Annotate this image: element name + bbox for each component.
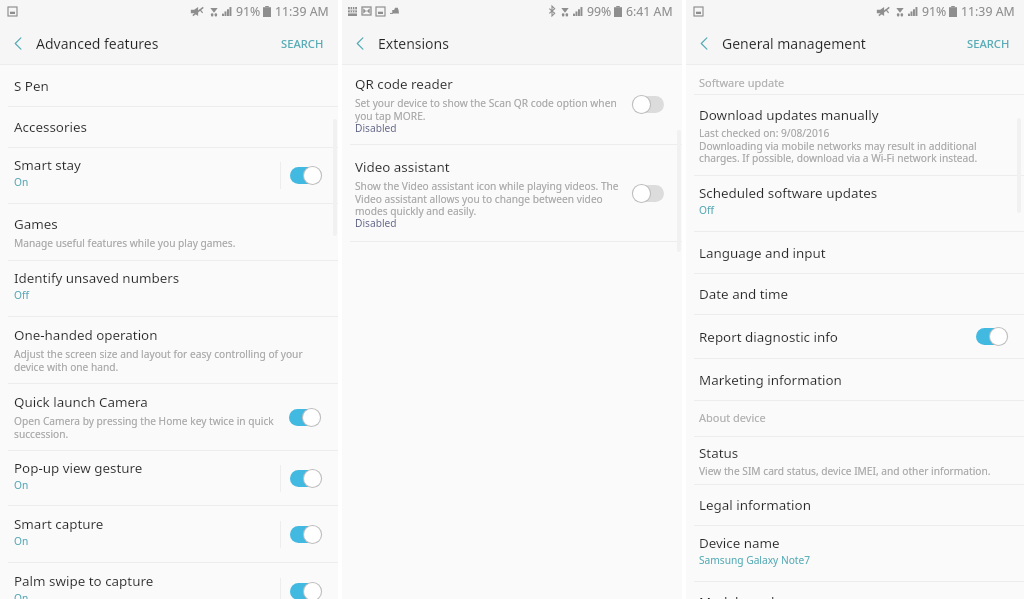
- staticText: Scheduled software updates: [699, 184, 878, 202]
- staticText: One-handed operation: [14, 326, 158, 344]
- staticText: Last checked on: 9/08/2016 Downloading v…: [699, 126, 978, 165]
- button[interactable]: One-handed operation: [0, 317, 338, 383]
- button[interactable]: Identify unsaved numbers: [0, 261, 338, 316]
- staticText: SEARCH: [967, 36, 1010, 51]
- staticText: 91%: [922, 3, 947, 20]
- staticText: On: [14, 591, 29, 599]
- button[interactable]: Smart capture switch: [290, 524, 321, 545]
- staticText: Show the Video assistant icon while play…: [355, 179, 619, 218]
- button[interactable]: Pop-up view gesture switch: [290, 468, 321, 489]
- button[interactable]: Language and input: [686, 232, 1024, 273]
- button[interactable]: Device name: [686, 526, 1024, 581]
- button[interactable]: Legal information: [686, 485, 1024, 525]
- button[interactable]: Navigate up: [348, 31, 372, 55]
- button[interactable]: Palm swipe to capture switch: [290, 581, 321, 599]
- staticText: Games: [14, 215, 58, 233]
- button[interactable]: Status: [686, 437, 1024, 484]
- button[interactable]: Quick launch Camera switch: [289, 407, 320, 428]
- staticText: Download updates manually: [699, 106, 879, 124]
- staticText: On: [14, 175, 29, 189]
- staticText: On: [14, 534, 29, 548]
- button[interactable]: Download updates manually: [686, 95, 1024, 175]
- staticText: Open Camera by pressing the Home key twi…: [14, 414, 274, 441]
- staticText: On: [14, 478, 29, 492]
- staticText: Extensions: [378, 34, 449, 53]
- button[interactable]: Navigate up: [692, 31, 716, 55]
- button[interactable]: S Pen: [0, 65, 338, 106]
- staticText: 6:41 AM: [626, 3, 673, 20]
- button[interactable]: Video assistant switch: [633, 183, 664, 204]
- button[interactable]: Palm swipe to capture: [0, 563, 338, 599]
- staticText: Set your device to show the Scan QR code…: [355, 96, 617, 123]
- staticText: About device: [699, 410, 766, 425]
- staticText: Smart capture: [14, 515, 104, 533]
- button[interactable]: Smart capture: [0, 506, 338, 562]
- staticText: 91%: [236, 3, 261, 20]
- staticText: Legal information: [699, 496, 811, 514]
- button[interactable]: Accessories: [0, 107, 338, 147]
- button[interactable]: Scheduled software updates: [686, 176, 1024, 231]
- button[interactable]: Pop-up view gesture: [0, 451, 338, 505]
- button[interactable]: Marketing information: [686, 359, 1024, 400]
- staticText: S Pen: [14, 77, 49, 95]
- button[interactable]: Date and time: [686, 274, 1024, 314]
- staticText: Palm swipe to capture: [14, 572, 154, 590]
- staticText: 11:39 AM: [275, 3, 329, 20]
- staticText: Off: [14, 288, 29, 302]
- staticText: Device name: [699, 534, 780, 552]
- button[interactable]: Report diagnostic info switch: [976, 326, 1007, 347]
- staticText: Accessories: [14, 118, 87, 136]
- staticText: Pop-up view gesture: [14, 459, 143, 477]
- staticText: Advanced features: [36, 34, 159, 53]
- staticText: Quick launch Camera: [14, 393, 148, 411]
- button[interactable]: QR code reader switch: [633, 94, 664, 115]
- button[interactable]: Report diagnostic info: [686, 315, 1024, 358]
- button[interactable]: Smart stay: [0, 148, 338, 203]
- staticText: Disabled: [355, 121, 397, 135]
- button[interactable]: QR code reader: [342, 65, 682, 144]
- staticText: 11:39 AM: [961, 3, 1015, 20]
- staticText: Status: [699, 444, 739, 462]
- button[interactable]: Model number: [686, 582, 1024, 599]
- staticText: Smart stay: [14, 156, 81, 174]
- staticText: SEARCH: [281, 36, 324, 51]
- button[interactable]: Smart stay switch: [290, 165, 321, 186]
- staticText: Language and input: [699, 244, 826, 262]
- staticText: Off: [699, 203, 714, 217]
- staticText: Adjust the screen size and layout for ea…: [14, 347, 303, 374]
- staticText: Manage useful features while you play ga…: [14, 236, 236, 250]
- button[interactable]: SEARCH: [964, 32, 1013, 55]
- staticText: Samsung Galaxy Note7: [699, 553, 811, 567]
- staticText: Software update: [699, 75, 785, 90]
- button[interactable]: Navigate up: [6, 31, 30, 55]
- staticText: View the SIM card status, device IMEI, a…: [699, 464, 991, 478]
- staticText: Report diagnostic info: [699, 328, 838, 346]
- staticText: 99%: [587, 3, 612, 20]
- button[interactable]: Quick launch Camera: [0, 384, 338, 450]
- staticText: Model number: [699, 593, 793, 599]
- staticText: Disabled: [355, 216, 397, 230]
- button[interactable]: Games: [0, 204, 338, 260]
- staticText: QR code reader: [355, 75, 453, 93]
- button[interactable]: SEARCH: [278, 32, 327, 55]
- staticText: Video assistant: [355, 158, 450, 176]
- staticText: Marketing information: [699, 371, 842, 389]
- staticText: Identify unsaved numbers: [14, 269, 180, 287]
- button[interactable]: Video assistant: [342, 145, 682, 241]
- staticText: General management: [722, 34, 866, 53]
- staticText: Date and time: [699, 285, 789, 303]
